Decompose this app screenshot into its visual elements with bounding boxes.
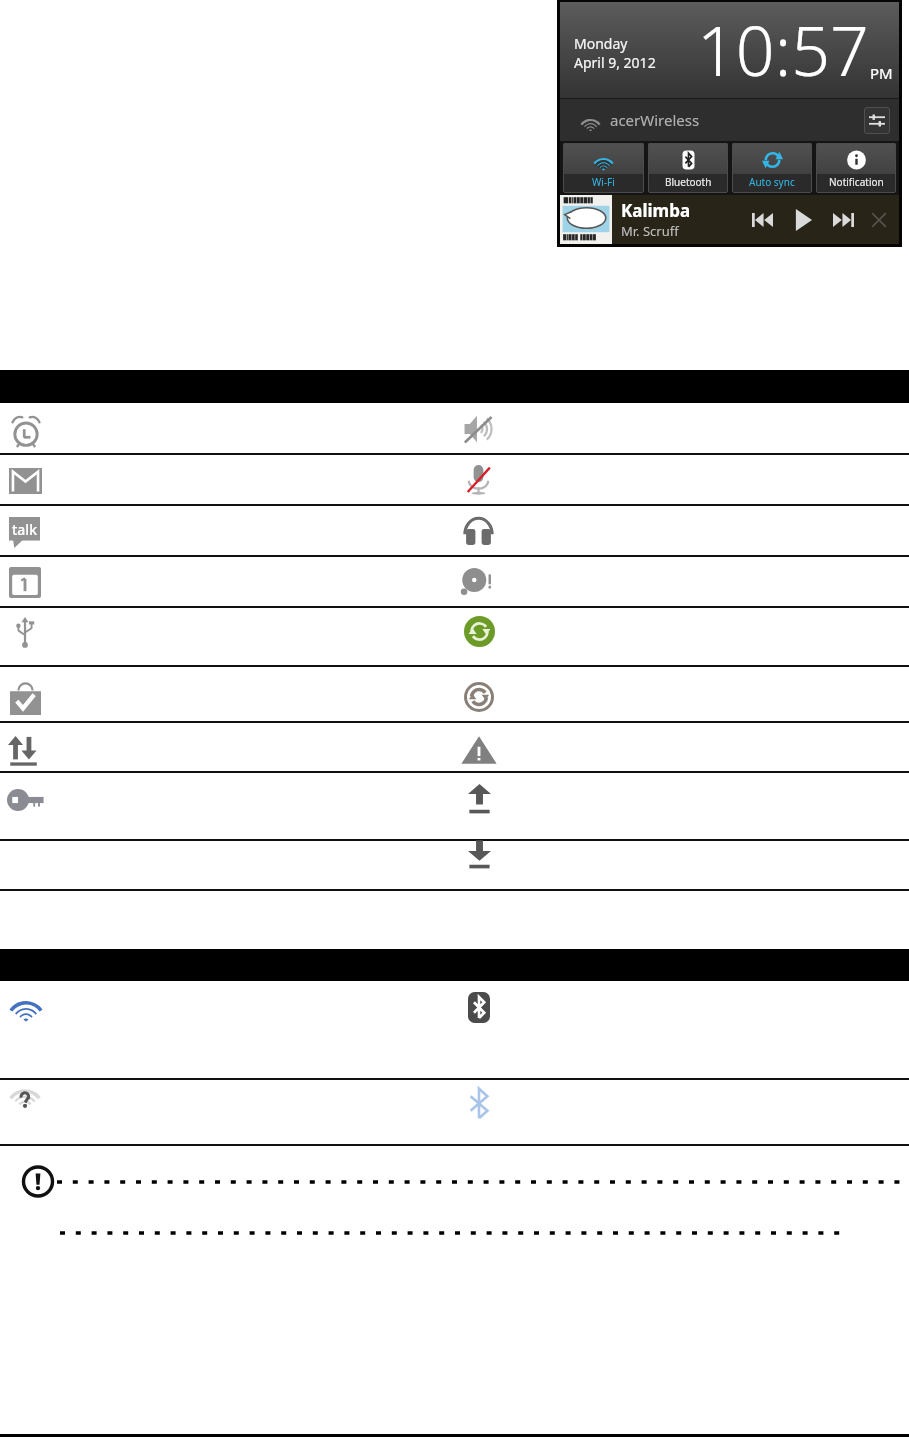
staticText: acerWireless	[610, 110, 700, 130]
button[interactable]: Play	[794, 195, 813, 244]
button[interactable]: Auto sync	[732, 143, 812, 193]
staticText: talk	[12, 520, 37, 539]
button[interactable]: Bluetooth	[648, 143, 728, 193]
staticText: Bluetooth	[665, 175, 712, 189]
button[interactable]: Notification	[816, 143, 896, 193]
staticText: Mr. Scruff	[621, 222, 679, 240]
button[interactable]: Previous	[752, 195, 773, 244]
button[interactable]: Next	[833, 195, 854, 244]
staticText: PM	[870, 63, 893, 83]
staticText: Kalimba	[621, 199, 691, 222]
staticText: April 9, 2012	[574, 53, 656, 72]
staticText: Wi-Fi	[592, 175, 615, 189]
button[interactable]: Settings	[864, 107, 890, 134]
staticText: 10:57	[697, 3, 869, 96]
button[interactable]: Wi-Fi	[563, 143, 644, 193]
button[interactable]: Dismiss	[870, 195, 888, 244]
staticText: Monday	[574, 34, 628, 53]
staticText: Notification	[829, 175, 884, 189]
staticText: Auto sync	[749, 175, 795, 189]
